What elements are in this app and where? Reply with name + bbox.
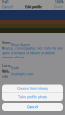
staticText: Website [2,69,10,79]
staticText: 100% [55,0,63,4]
button[interactable]: Name [0,42,65,48]
staticText: Cancel [2,5,13,9]
staticText: Done [54,5,63,9]
staticText: Cancel [27,105,38,109]
staticText: Choose from library [17,86,48,91]
staticText: Name [2,40,11,50]
staticText: Edit profile [25,5,42,9]
button[interactable]: Biopsy, consequatur, nec mihi mi idio gr… [0,48,65,58]
staticText: Biopsy, consequatur, nec mihi mi idio gr… [2,46,63,60]
staticText: Take profile photo [18,95,47,99]
button[interactable]: Cancel [2,5,13,9]
staticText: Location [2,63,11,73]
button[interactable]: Choose from library [2,84,63,92]
button[interactable]: Take profile photo [2,93,63,101]
button[interactable]: Location [0,65,65,71]
staticText: example.com [11,72,33,76]
staticText: New Name [11,43,30,47]
staticText: Earth [11,66,19,70]
staticText: 9:41 [2,0,9,4]
button[interactable]: Cancel [2,103,63,111]
button[interactable]: Done [54,5,63,9]
button[interactable]: Website [0,71,65,77]
